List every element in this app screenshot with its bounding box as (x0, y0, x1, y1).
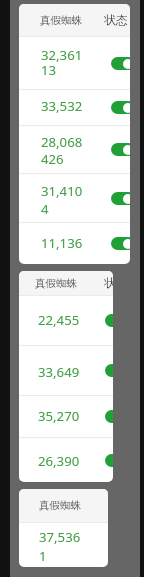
staticText: 状态 (104, 13, 128, 28)
button[interactable]: 28,068426 (19, 126, 130, 173)
button[interactable]: Toggle (105, 454, 113, 467)
button[interactable]: 37,5361 (19, 523, 108, 567)
staticText: 真假蜘蛛 (40, 14, 83, 27)
button[interactable]: Toggle (105, 314, 113, 327)
button[interactable]: 11,136 (19, 223, 130, 264)
button[interactable]: Toggle (111, 101, 130, 114)
staticText: 22,455 (38, 311, 84, 329)
button[interactable]: Toggle (111, 237, 130, 250)
button[interactable]: Toggle (111, 143, 130, 156)
staticText: 26,390 (38, 452, 84, 470)
button[interactable]: Toggle (111, 57, 130, 70)
button[interactable]: Toggle (105, 364, 113, 377)
button[interactable]: 33,532 (19, 90, 130, 125)
button[interactable]: 26,390 (19, 438, 113, 482)
staticText: 真假蜘蛛 (35, 277, 78, 290)
staticText: 37,5361 (39, 528, 85, 565)
staticText: 真假蜘蛛 (39, 499, 82, 512)
staticText: 31,4104 (41, 182, 87, 218)
button[interactable]: Toggle (111, 192, 130, 205)
button[interactable]: 32,36113 (19, 37, 130, 89)
staticText: 状态 (104, 276, 113, 291)
staticText: 33,532 (41, 97, 87, 115)
button[interactable]: 31,4104 (19, 174, 130, 222)
button[interactable]: Toggle (105, 410, 113, 423)
staticText: 32,36113 (41, 46, 87, 79)
staticText: 28,068426 (41, 133, 87, 168)
staticText: 35,270 (38, 407, 84, 425)
staticText: 11,136 (41, 234, 87, 252)
button[interactable]: 33,649 (19, 346, 113, 395)
staticText: 33,649 (38, 363, 84, 381)
button[interactable]: 35,270 (19, 396, 113, 437)
button[interactable]: 22,455 (19, 296, 113, 345)
